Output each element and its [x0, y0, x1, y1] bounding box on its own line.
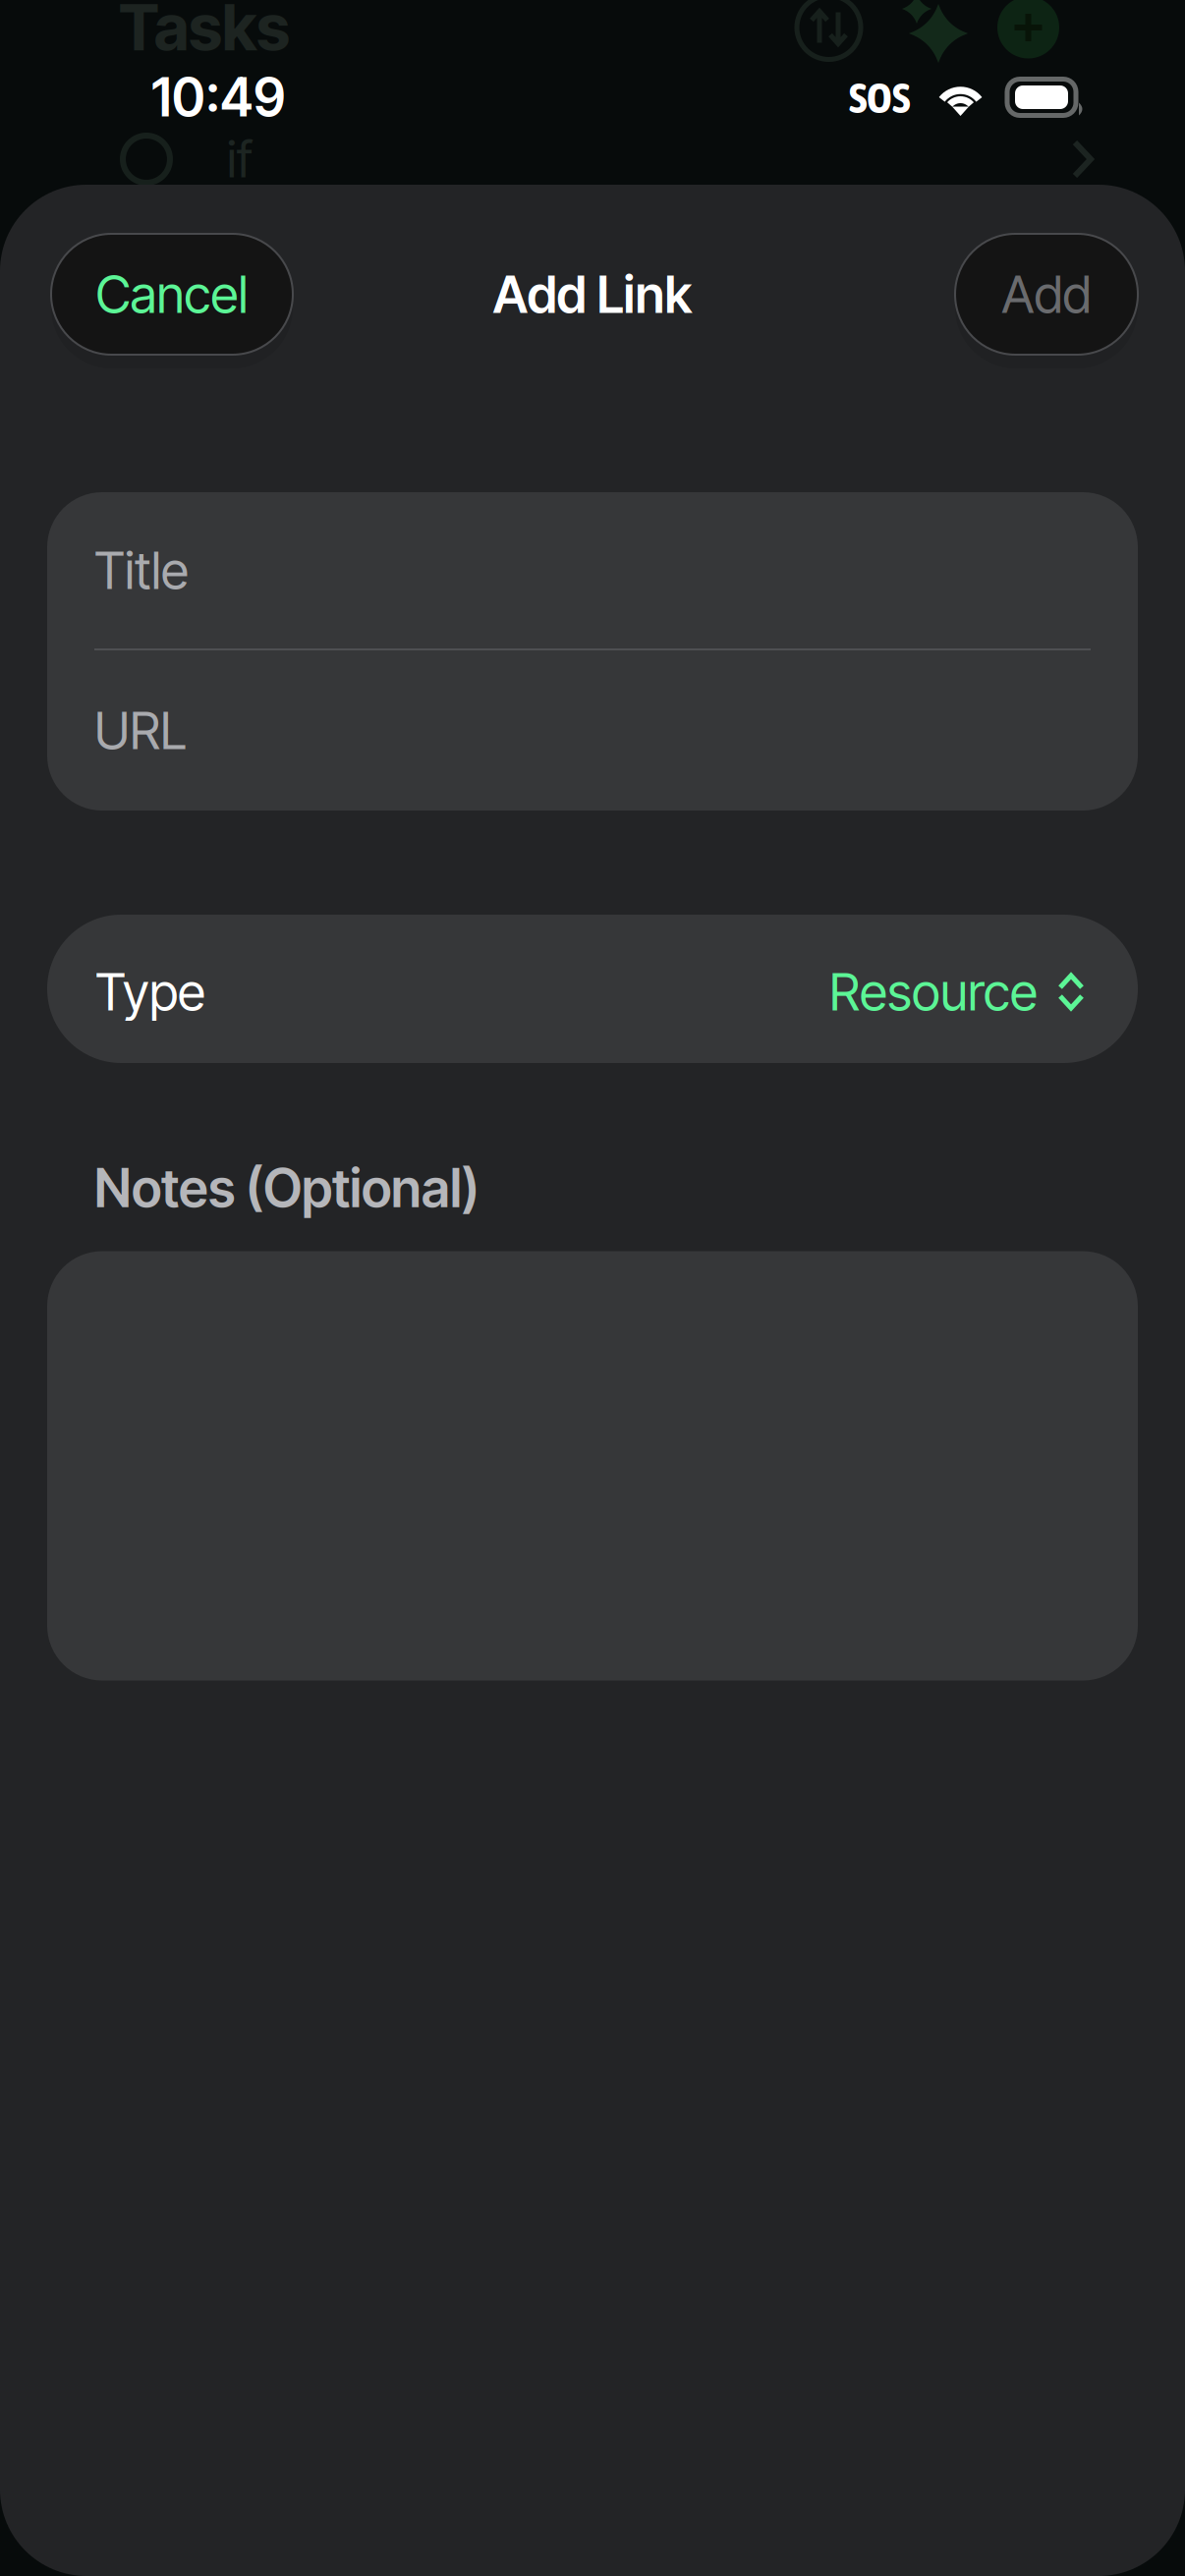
staticText: Title [94, 539, 189, 601]
button[interactable]: Type [47, 915, 1138, 1063]
button[interactable]: URL [47, 650, 1138, 811]
staticText: Tasks [119, 0, 290, 66]
staticText: if [227, 129, 253, 189]
staticText: URL [94, 700, 187, 761]
staticText: Resource [829, 961, 1038, 1023]
staticText: Add [1002, 263, 1091, 325]
staticText: SOS [849, 73, 910, 122]
staticText: 10:49 [151, 66, 286, 129]
staticText: Type [95, 961, 205, 1023]
button[interactable]: Cancel [51, 234, 293, 355]
staticText: Notes (Optional) [94, 1156, 480, 1220]
button[interactable]: Title [47, 492, 1138, 648]
staticText: Cancel [96, 263, 248, 325]
staticText: Add Link [493, 263, 692, 325]
button[interactable]: Add [955, 234, 1138, 355]
